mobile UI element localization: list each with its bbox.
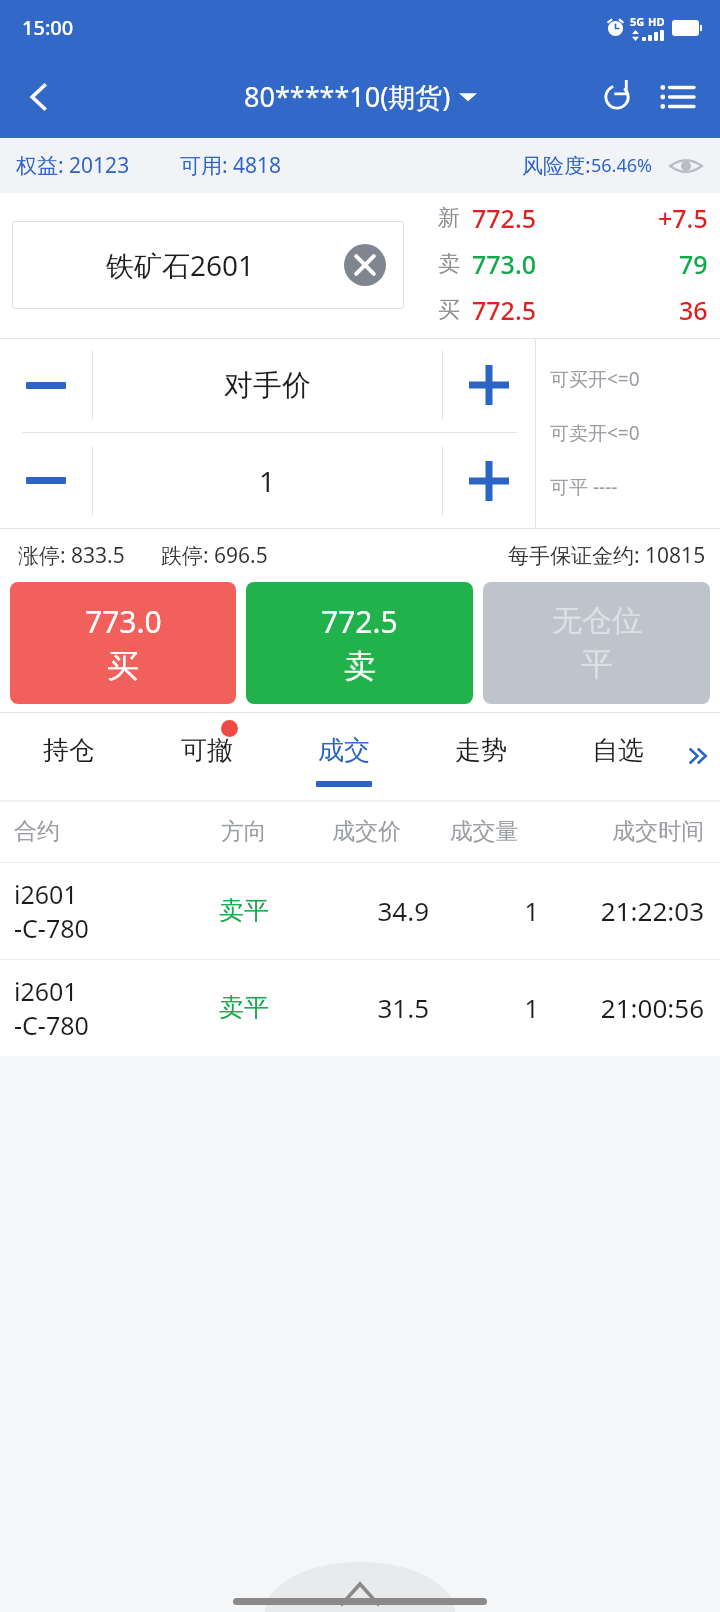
button[interactable]: Refresh bbox=[586, 55, 648, 138]
button[interactable]: Increase bbox=[443, 433, 535, 528]
staticText: i2601 bbox=[14, 877, 78, 911]
staticText: HD bbox=[648, 14, 665, 29]
button[interactable]: 自选 bbox=[549, 712, 686, 800]
staticText: 772.5 bbox=[472, 201, 537, 235]
staticText: 可撤 bbox=[181, 734, 233, 767]
staticText: 80*****10(期货) bbox=[244, 78, 451, 115]
button[interactable]: Toggle visibility bbox=[666, 146, 706, 186]
button[interactable]: Decrease bbox=[0, 433, 92, 528]
staticText: 可卖开<=0 bbox=[550, 420, 640, 446]
staticText: 21:00:56 bbox=[539, 990, 704, 1025]
staticText: -C-780 bbox=[14, 1008, 89, 1042]
staticText: 自选 bbox=[592, 734, 644, 767]
button[interactable]: Expand bbox=[265, 1562, 455, 1612]
staticText: 合约 bbox=[14, 817, 184, 846]
button[interactable]: Back bbox=[0, 55, 78, 138]
staticText: -C-780 bbox=[14, 911, 89, 945]
button[interactable]: 无仓位 bbox=[483, 582, 710, 704]
staticText: 卖 bbox=[438, 250, 460, 278]
staticText: +7.5 bbox=[658, 201, 708, 235]
staticText: 卖平 bbox=[184, 992, 304, 1023]
button[interactable]: 可撤 bbox=[138, 712, 275, 800]
staticText: 对手价 bbox=[224, 367, 311, 404]
button[interactable]: Menu bbox=[648, 55, 706, 138]
staticText: 772.5 bbox=[472, 293, 537, 327]
staticText: 773.0 bbox=[472, 247, 537, 281]
button[interactable]: 持仓 bbox=[0, 712, 138, 800]
button[interactable]: 可用: 4818 bbox=[180, 151, 282, 180]
staticText: 56.46% bbox=[591, 153, 652, 178]
button[interactable]: Clear bbox=[344, 244, 386, 286]
button[interactable]: i2601 bbox=[14, 959, 704, 1056]
staticText: 772.5 bbox=[321, 601, 398, 642]
staticText: 1 bbox=[429, 990, 539, 1025]
staticText: 可买开<=0 bbox=[550, 366, 640, 392]
staticText: 5G bbox=[630, 14, 645, 29]
staticText: 79 bbox=[679, 247, 708, 281]
staticText: 可平 ---- bbox=[550, 474, 618, 500]
staticText: 36 bbox=[679, 293, 708, 327]
staticText: 成交量 bbox=[429, 817, 539, 846]
staticText: 1 bbox=[429, 893, 539, 928]
staticText: 方向 bbox=[184, 817, 304, 846]
button[interactable]: Increase bbox=[443, 338, 535, 432]
staticText: 34.9 bbox=[304, 893, 429, 928]
staticText: 31.5 bbox=[304, 990, 429, 1025]
staticText: i2601 bbox=[14, 974, 78, 1008]
staticText: 卖平 bbox=[184, 895, 304, 926]
button[interactable]: 走势 bbox=[412, 712, 549, 800]
staticText: 买 bbox=[438, 296, 460, 324]
button[interactable]: More tabs bbox=[680, 738, 716, 774]
staticText: 风险度: bbox=[522, 151, 591, 180]
staticText: 涨停: 833.5 bbox=[18, 541, 125, 570]
button[interactable]: 772.5 bbox=[246, 582, 473, 704]
staticText: 1 bbox=[259, 462, 276, 500]
staticText: 跌停: 696.5 bbox=[161, 541, 268, 570]
button[interactable]: 权益: 20123 bbox=[16, 151, 130, 180]
staticText: 卖 bbox=[344, 646, 376, 686]
staticText: 铁矿石2601 bbox=[106, 246, 255, 284]
staticText: 成交 bbox=[318, 734, 370, 767]
staticText: 15:00 bbox=[22, 14, 74, 41]
staticText: 持仓 bbox=[43, 734, 95, 767]
staticText: 成交价 bbox=[304, 817, 429, 846]
button[interactable]: 80*****10(期货) bbox=[244, 78, 477, 115]
button[interactable]: i2601 bbox=[14, 862, 704, 959]
staticText: 平 bbox=[581, 644, 613, 684]
staticText: 成交时间 bbox=[539, 817, 704, 846]
staticText: 新 bbox=[438, 204, 460, 232]
staticText: 773.0 bbox=[85, 601, 162, 642]
staticText: 走势 bbox=[455, 734, 507, 767]
staticText: 买 bbox=[107, 646, 139, 686]
staticText: 无仓位 bbox=[552, 602, 642, 640]
button[interactable]: Decrease bbox=[0, 338, 92, 432]
button[interactable]: 773.0 bbox=[10, 582, 236, 704]
button[interactable]: 成交 bbox=[275, 712, 412, 800]
staticText: 21:22:03 bbox=[539, 893, 704, 928]
staticText: 每手保证金约: 10815 bbox=[508, 541, 706, 570]
button[interactable]: 铁矿石2601 bbox=[12, 221, 404, 309]
